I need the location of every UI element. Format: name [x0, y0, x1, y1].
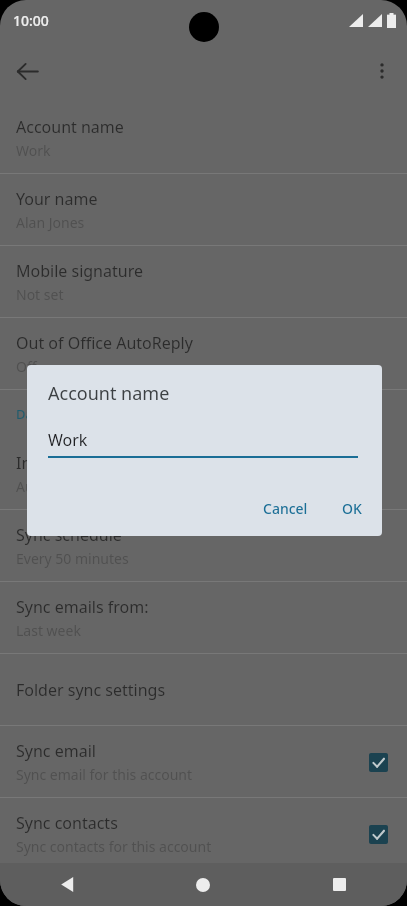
button[interactable]: Sync email [0, 726, 407, 797]
button[interactable]: Recent apps [271, 863, 407, 906]
staticText: Work [16, 141, 51, 160]
staticText: Sync contacts [16, 812, 118, 834]
staticText: Data usage [16, 405, 87, 423]
staticText: Sync email [16, 740, 96, 762]
staticText: Account name [16, 116, 124, 138]
button[interactable]: Back [0, 863, 135, 906]
button[interactable]: Toggle [365, 749, 391, 775]
button[interactable]: Cancel [253, 491, 318, 526]
staticText: Automatic (Push) [16, 477, 128, 496]
staticText: 10:00 [13, 11, 49, 30]
staticText: Sync calendar [16, 870, 120, 892]
button[interactable]: Toggle [365, 821, 391, 847]
button[interactable]: Sync contacts [0, 798, 407, 869]
button[interactable]: Out of Office AutoReply [0, 318, 407, 389]
staticText: Cancel [263, 499, 308, 518]
button[interactable]: Mobile signature [0, 246, 407, 317]
button[interactable]: Back [4, 48, 50, 94]
staticText: OK [342, 499, 362, 518]
staticText: Sync calendar for this account [16, 895, 213, 906]
staticText: Mobile signature [16, 260, 143, 282]
staticText: Account name [48, 381, 170, 406]
staticText: Alan Jones [16, 213, 85, 232]
button[interactable]: Sync calendar [0, 870, 407, 906]
staticText: Off [16, 357, 37, 376]
staticText: Last week [16, 621, 81, 640]
button[interactable]: Your name [0, 174, 407, 245]
button[interactable]: More options [359, 48, 405, 94]
staticText: Sync contacts for this account [16, 837, 212, 856]
button[interactable]: Sync emails from: [0, 582, 407, 653]
button[interactable]: Folder sync settings [0, 654, 407, 725]
staticText: Out of Office AutoReply [16, 332, 193, 354]
staticText: Folder sync settings [16, 679, 166, 701]
staticText: Every 50 minutes [16, 549, 129, 568]
staticText: Sync schedule [16, 524, 122, 546]
staticText: Not set [16, 285, 64, 304]
button[interactable]: OK [332, 491, 372, 526]
button[interactable]: Inbox check frequency [0, 438, 407, 509]
button[interactable]: Account name [0, 102, 407, 173]
staticText: Your name [16, 188, 98, 210]
staticText: Sync email for this account [16, 765, 193, 784]
staticText: Work [48, 429, 88, 451]
button[interactable]: Home [135, 863, 271, 906]
staticText: Inbox check frequency [16, 452, 186, 474]
button[interactable]: Sync schedule [0, 510, 407, 581]
staticText: Sync emails from: [16, 596, 149, 618]
